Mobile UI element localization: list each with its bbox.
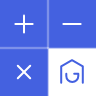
- button[interactable]: Home: [48, 48, 96, 96]
- button[interactable]: Close: [0, 48, 48, 96]
- button[interactable]: Add: [0, 0, 48, 48]
- button[interactable]: Remove: [48, 0, 96, 48]
